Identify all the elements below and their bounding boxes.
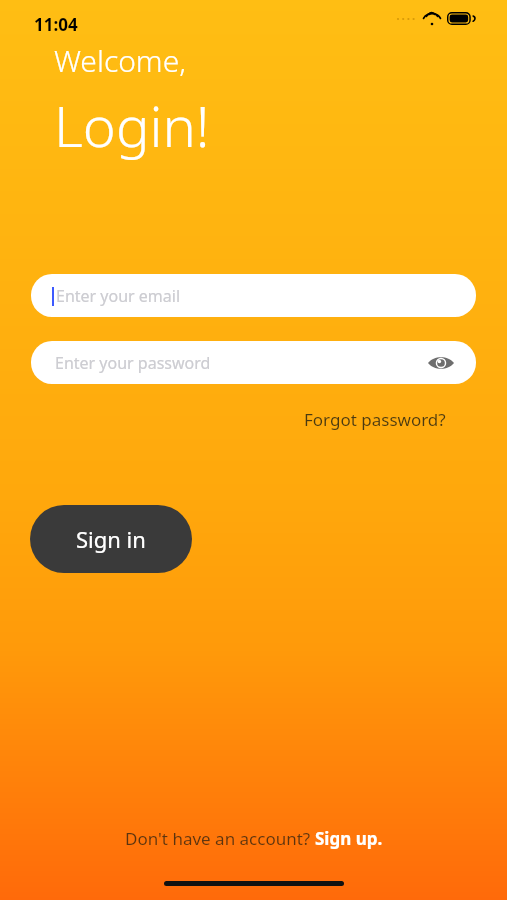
staticText: Sign in [76, 524, 146, 554]
staticText: Sign up. [315, 827, 383, 850]
button[interactable]: Sign in [30, 505, 192, 573]
staticText: Login! [54, 87, 210, 163]
staticText: Don't have an account? [125, 827, 315, 850]
staticText: Welcome, [54, 40, 186, 81]
staticText: 11:04 [34, 13, 78, 36]
button[interactable]: Show password [426, 348, 456, 378]
staticText: Enter your email [56, 285, 181, 307]
staticText: Enter your password [55, 352, 211, 374]
button[interactable]: Enter your password [31, 341, 476, 384]
button[interactable]: Enter your email [31, 274, 476, 317]
staticText: Forgot password? [304, 408, 446, 431]
button[interactable]: Forgot password? [300, 406, 450, 433]
button[interactable]: Sign up. [315, 827, 383, 850]
